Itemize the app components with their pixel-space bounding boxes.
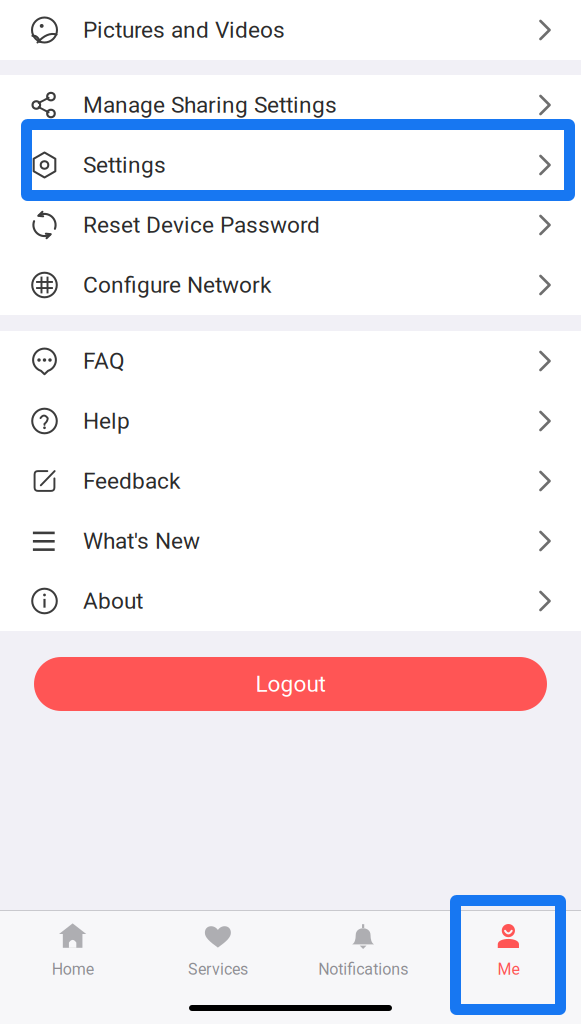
staticText: Feedback [83,468,180,494]
staticText: Settings [83,152,166,178]
staticText: Notifications [318,960,408,979]
button[interactable]: Logout [34,657,547,711]
staticText: Manage Sharing Settings [83,92,337,118]
button[interactable]: FAQ [0,331,581,391]
staticText: Pictures and Videos [83,17,285,43]
button[interactable]: Reset Device Password [0,195,581,255]
button[interactable]: Pictures and Videos [0,0,581,60]
button[interactable]: Help [0,391,581,451]
button[interactable]: Me [436,911,581,985]
staticText: What's New [83,528,200,554]
staticText: Configure Network [83,272,271,298]
staticText: FAQ [83,348,125,374]
button[interactable]: About [0,571,581,631]
button[interactable]: Settings [0,135,581,195]
staticText: Reset Device Password [83,212,320,238]
staticText: Me [497,960,519,979]
button[interactable]: Feedback [0,451,581,511]
staticText: Home [52,960,94,979]
staticText: Help [83,408,130,434]
button[interactable]: Home [0,911,145,985]
button[interactable]: What's New [0,511,581,571]
button[interactable]: Manage Sharing Settings [0,75,581,135]
staticText: Services [188,960,248,979]
button[interactable]: Configure Network [0,255,581,315]
button[interactable]: Notifications [290,911,436,985]
staticText: About [83,588,143,614]
button[interactable]: Services [145,911,290,985]
staticText: Logout [255,671,325,697]
